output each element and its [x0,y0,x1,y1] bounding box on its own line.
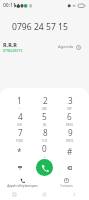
staticText: 1 [17,95,22,106]
staticText: Agenda [58,44,74,50]
staticText: Appels téléphoniques [7,184,38,188]
staticText: 00:11 [3,2,16,9]
button[interactable]: 4 [7,111,32,127]
staticText: 4 [18,111,23,122]
staticText: 0796245715 [3,48,23,53]
staticText: 3 [68,95,73,106]
staticText: + [44,155,46,159]
staticText: 0796 24 57 15 [12,21,68,33]
staticText: GHI [17,123,23,127]
button[interactable]: 2 [32,95,57,111]
staticText: ABC [42,107,48,111]
staticText: # [67,146,73,157]
button[interactable]: Appels téléphoniques [0,176,44,189]
button[interactable]: R.R.R [3,41,23,53]
staticText: 6 [67,111,72,122]
button[interactable]: 3 [57,95,82,111]
staticText: JKL [43,123,47,127]
staticText: • [19,107,21,111]
button[interactable]: 1 [7,95,32,111]
staticText: 5 [42,111,47,122]
button[interactable]: Call [36,159,53,176]
staticText: 8 [43,127,48,138]
staticText: 7 [18,127,23,138]
staticText: MNO [66,123,73,127]
button[interactable]: 5 [32,111,57,127]
button[interactable]: Hide keypad [7,159,32,176]
button[interactable]: Back [59,189,89,200]
button[interactable]: Backspace [57,159,82,176]
button[interactable]: # [57,143,82,159]
staticText: PQRS [16,139,24,143]
staticText: 9 [68,127,73,138]
staticText: R.R.R [3,41,17,48]
button[interactable]: Contacts [44,176,89,189]
staticText: * [17,146,22,157]
staticText: WXYZ [66,139,74,143]
staticText: 2 [43,95,48,106]
button[interactable]: 9 [57,127,82,143]
button[interactable]: * [7,143,32,159]
button[interactable]: Agenda [58,44,81,50]
staticText: DEF [67,107,73,111]
button[interactable]: 8 [32,127,57,143]
button[interactable]: 6 [57,111,82,127]
staticText: TUV [42,139,48,143]
button[interactable]: Home [29,189,59,200]
button[interactable]: Recent apps [0,189,29,200]
staticText: Contacts [60,184,73,188]
staticText: 0 [42,143,47,154]
button[interactable]: 7 [7,127,32,143]
button[interactable]: 0 [32,143,57,159]
